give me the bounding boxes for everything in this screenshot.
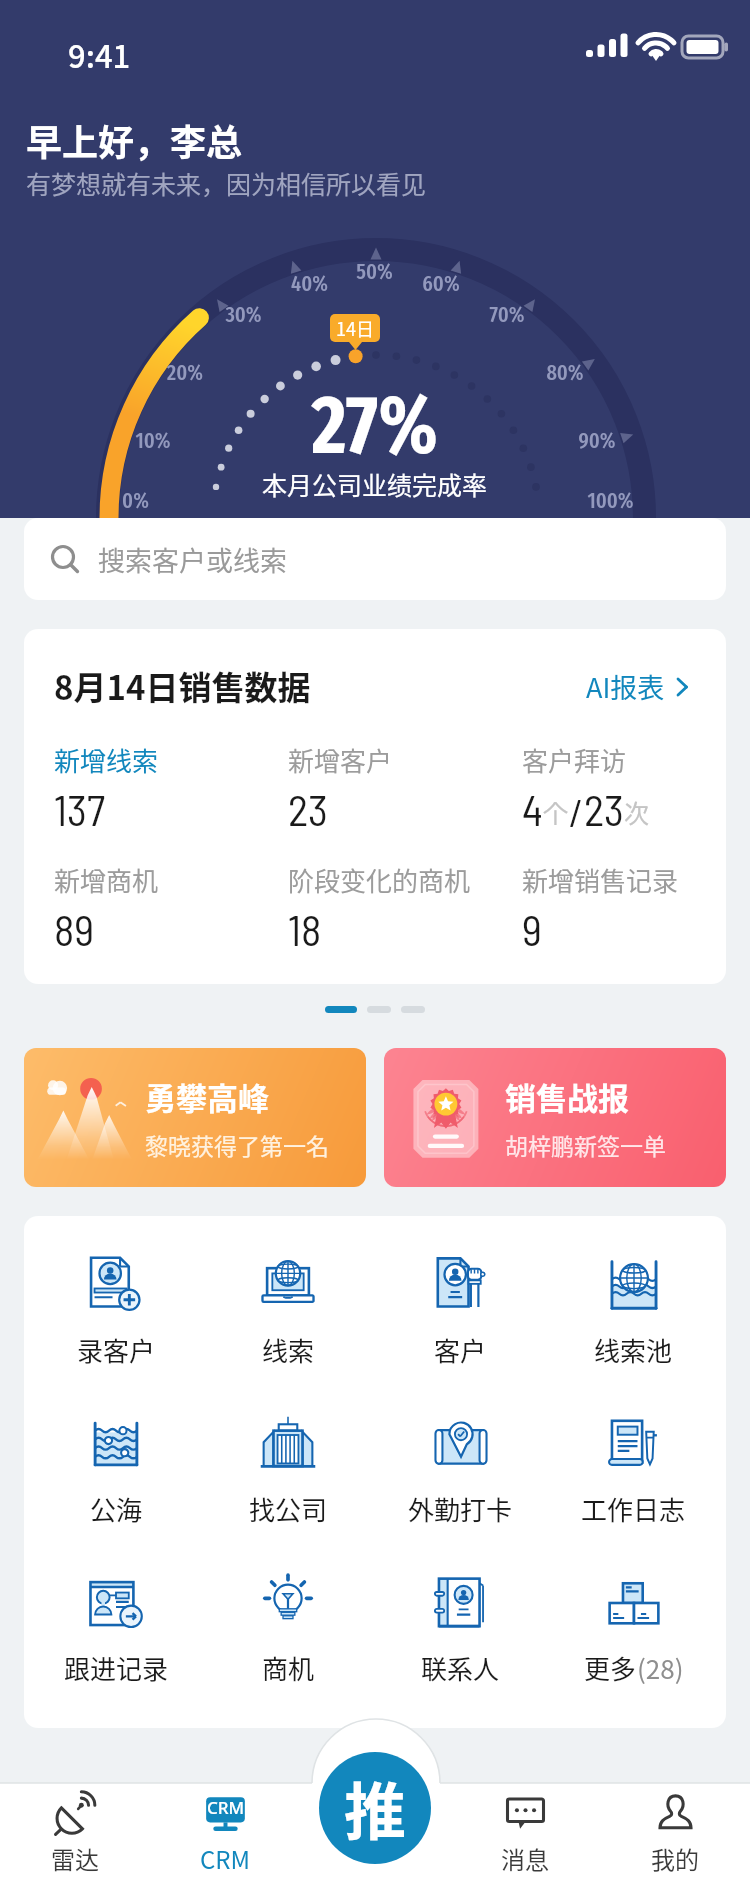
button[interactable]: 新增线索 xyxy=(54,741,288,835)
button[interactable]: 线索 xyxy=(202,1256,374,1415)
staticText: 23 xyxy=(584,783,624,835)
button[interactable]: 搜索客户或线索 xyxy=(24,518,726,600)
staticText: CRM xyxy=(207,1796,245,1819)
staticText: 黎晓获得了第一名 xyxy=(145,1128,329,1161)
staticText: 工作日志 xyxy=(581,1490,686,1528)
button[interactable]: 销售战报 xyxy=(384,1048,726,1187)
button[interactable]: 推荐 xyxy=(319,1752,431,1864)
button[interactable]: 消息 xyxy=(450,1783,600,1882)
staticText: 胡梓鹏新签一单 xyxy=(505,1128,666,1161)
staticText: 0% xyxy=(122,487,149,513)
staticText: 新增客户 xyxy=(288,741,393,779)
staticText: 线索 xyxy=(262,1331,315,1369)
staticText: 23 xyxy=(288,783,328,835)
staticText: 勇攀高峰 xyxy=(145,1074,269,1119)
staticText: 更多 xyxy=(584,1649,637,1687)
button[interactable]: 线索池 xyxy=(547,1256,720,1415)
button[interactable]: 我的 xyxy=(600,1783,750,1882)
staticText: 次 xyxy=(624,794,650,830)
staticText: 18 xyxy=(288,903,322,955)
button[interactable]: 公海 xyxy=(30,1415,202,1574)
button[interactable]: 找公司 xyxy=(202,1415,374,1574)
button[interactable]: 阶段变化的商机 xyxy=(288,861,522,955)
staticText: 我的 xyxy=(651,1841,699,1876)
staticText: 60% xyxy=(422,270,460,296)
staticText: 公海 xyxy=(90,1490,143,1528)
staticText: 4 xyxy=(522,783,543,835)
staticText: 个 xyxy=(543,794,569,830)
button[interactable]: 勇攀高峰 xyxy=(24,1048,366,1187)
button[interactable]: 客户拜访 xyxy=(522,741,726,835)
staticText: 9:41 xyxy=(68,32,131,77)
staticText: 9 xyxy=(522,903,542,955)
staticText: 新增商机 xyxy=(54,861,159,899)
staticText: / xyxy=(569,788,584,835)
button[interactable]: 工作日志 xyxy=(547,1415,720,1574)
button[interactable]: 更多 xyxy=(547,1574,720,1728)
staticText: 商机 xyxy=(262,1649,315,1687)
staticText: 阶段变化的商机 xyxy=(288,861,471,899)
staticText: 100% xyxy=(587,487,634,513)
button[interactable]: 商机 xyxy=(202,1574,374,1728)
staticText: 27% xyxy=(312,377,438,474)
button[interactable]: CRM xyxy=(150,1783,300,1882)
button[interactable]: 新增商机 xyxy=(54,861,288,955)
staticText: 找公司 xyxy=(249,1490,328,1528)
button[interactable]: 外勤打卡 xyxy=(374,1415,547,1574)
staticText: 雷达 xyxy=(51,1841,99,1876)
staticText: 联系人 xyxy=(421,1649,500,1687)
staticText: 137 xyxy=(54,783,105,835)
staticText: 本月公司业绩完成率 xyxy=(262,466,488,502)
staticText: 跟进记录 xyxy=(64,1649,169,1687)
button[interactable]: AI报表 xyxy=(586,667,689,706)
button[interactable]: 客户 xyxy=(374,1256,547,1415)
button[interactable]: 新增销售记录 xyxy=(522,861,726,955)
staticText: 有梦想就有未来，因为相信所以看见 xyxy=(26,165,427,201)
staticText: 推 xyxy=(344,1763,407,1853)
staticText: 线索池 xyxy=(594,1331,673,1369)
staticText: 录客户 xyxy=(77,1331,156,1369)
staticText: 客户拜访 xyxy=(522,741,627,779)
staticText: 70% xyxy=(489,301,525,327)
staticText: 新增线索 xyxy=(54,741,159,779)
staticText: 外勤打卡 xyxy=(408,1490,513,1528)
staticText: 30% xyxy=(225,301,262,327)
staticText: 40% xyxy=(291,270,328,296)
staticText: AI报表 xyxy=(586,667,665,706)
staticText: 销售战报 xyxy=(505,1074,629,1119)
staticText: 90% xyxy=(578,427,616,453)
staticText: 50% xyxy=(356,258,393,284)
button[interactable]: 新增客户 xyxy=(288,741,522,835)
staticText: 14日 xyxy=(336,315,374,341)
staticText: 89 xyxy=(54,903,95,955)
staticText: 新增销售记录 xyxy=(522,861,679,899)
staticText: (28) xyxy=(637,1649,684,1687)
button[interactable]: 录客户 xyxy=(30,1256,202,1415)
staticText: 8月14日销售数据 xyxy=(54,662,311,710)
staticText: 搜索客户或线索 xyxy=(98,540,287,579)
button[interactable]: 跟进记录 xyxy=(30,1574,202,1728)
staticText: 早上好，李总 xyxy=(26,114,243,166)
button[interactable]: 雷达 xyxy=(0,1783,150,1882)
staticText: 20% xyxy=(167,359,203,385)
button[interactable]: 联系人 xyxy=(374,1574,547,1728)
staticText: 消息 xyxy=(501,1841,549,1876)
staticText: CRM xyxy=(200,1841,251,1876)
staticText: 10% xyxy=(135,427,171,453)
staticText: 80% xyxy=(546,359,584,385)
staticText: 客户 xyxy=(434,1331,487,1369)
